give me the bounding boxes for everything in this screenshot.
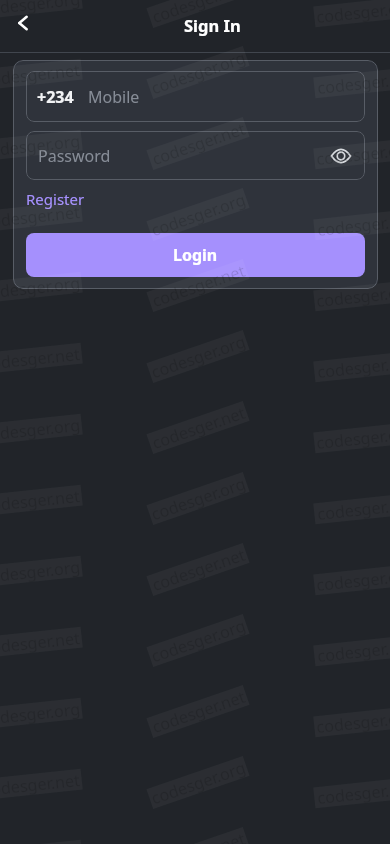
staticText: codesger.net bbox=[149, 402, 248, 453]
staticText: codesger.net bbox=[149, 0, 248, 27]
staticText: codesger.net bbox=[316, 777, 390, 808]
staticText: codesger.org bbox=[148, 756, 249, 808]
staticText: +234 bbox=[37, 86, 74, 108]
staticText: codesger.org bbox=[315, 280, 390, 311]
staticText: codesger.org bbox=[0, 0, 82, 19]
staticText: codesger.org bbox=[0, 130, 82, 161]
staticText: codesger.net bbox=[149, 686, 248, 737]
staticText: codesger.org bbox=[0, 840, 82, 844]
button[interactable]: Back bbox=[3, 3, 43, 43]
staticText: codesger.net bbox=[316, 493, 390, 524]
staticText: codesger.org bbox=[315, 706, 390, 737]
staticText: codesger.org bbox=[315, 0, 390, 27]
staticText: codesger.org bbox=[148, 614, 249, 666]
staticText: codesger.net bbox=[0, 627, 81, 658]
button[interactable]: Login bbox=[26, 233, 365, 277]
staticText: codesger.org bbox=[0, 414, 82, 445]
staticText: codesger.org bbox=[0, 272, 82, 303]
staticText: codesger.org bbox=[315, 138, 390, 169]
staticText: Login bbox=[173, 244, 218, 266]
staticText: Mobile bbox=[88, 86, 140, 108]
staticText: codesger.org bbox=[148, 188, 249, 240]
staticText: codesger.net bbox=[0, 59, 81, 90]
button[interactable]: +234 bbox=[26, 71, 365, 122]
button[interactable]: Show password bbox=[325, 140, 357, 172]
staticText: codesger.net bbox=[316, 635, 390, 666]
staticText: codesger.org bbox=[148, 46, 249, 98]
staticText: codesger.org bbox=[315, 422, 390, 453]
staticText: codesger.net bbox=[149, 260, 248, 311]
staticText: codesger.net bbox=[0, 343, 81, 374]
staticText: codesger.net bbox=[149, 828, 248, 844]
staticText: codesger.net bbox=[0, 769, 81, 800]
button[interactable]: Register bbox=[26, 189, 85, 209]
staticText: codesger.net bbox=[316, 209, 390, 240]
staticText: codesger.net bbox=[0, 201, 81, 232]
staticText: codesger.net bbox=[316, 351, 390, 382]
staticText: codesger.org bbox=[148, 472, 249, 524]
staticText: codesger.org bbox=[0, 698, 82, 729]
staticText: Password bbox=[38, 145, 111, 167]
staticText: codesger.org bbox=[0, 556, 82, 587]
staticText: codesger.org bbox=[315, 564, 390, 595]
staticText: codesger.net bbox=[149, 544, 248, 595]
staticText: Sign In bbox=[184, 14, 241, 36]
staticText: codesger.org bbox=[148, 330, 249, 382]
button[interactable]: Password bbox=[26, 131, 365, 180]
staticText: codesger.net bbox=[316, 67, 390, 98]
staticText: codesger.net bbox=[0, 485, 81, 516]
staticText: codesger.net bbox=[149, 118, 248, 169]
